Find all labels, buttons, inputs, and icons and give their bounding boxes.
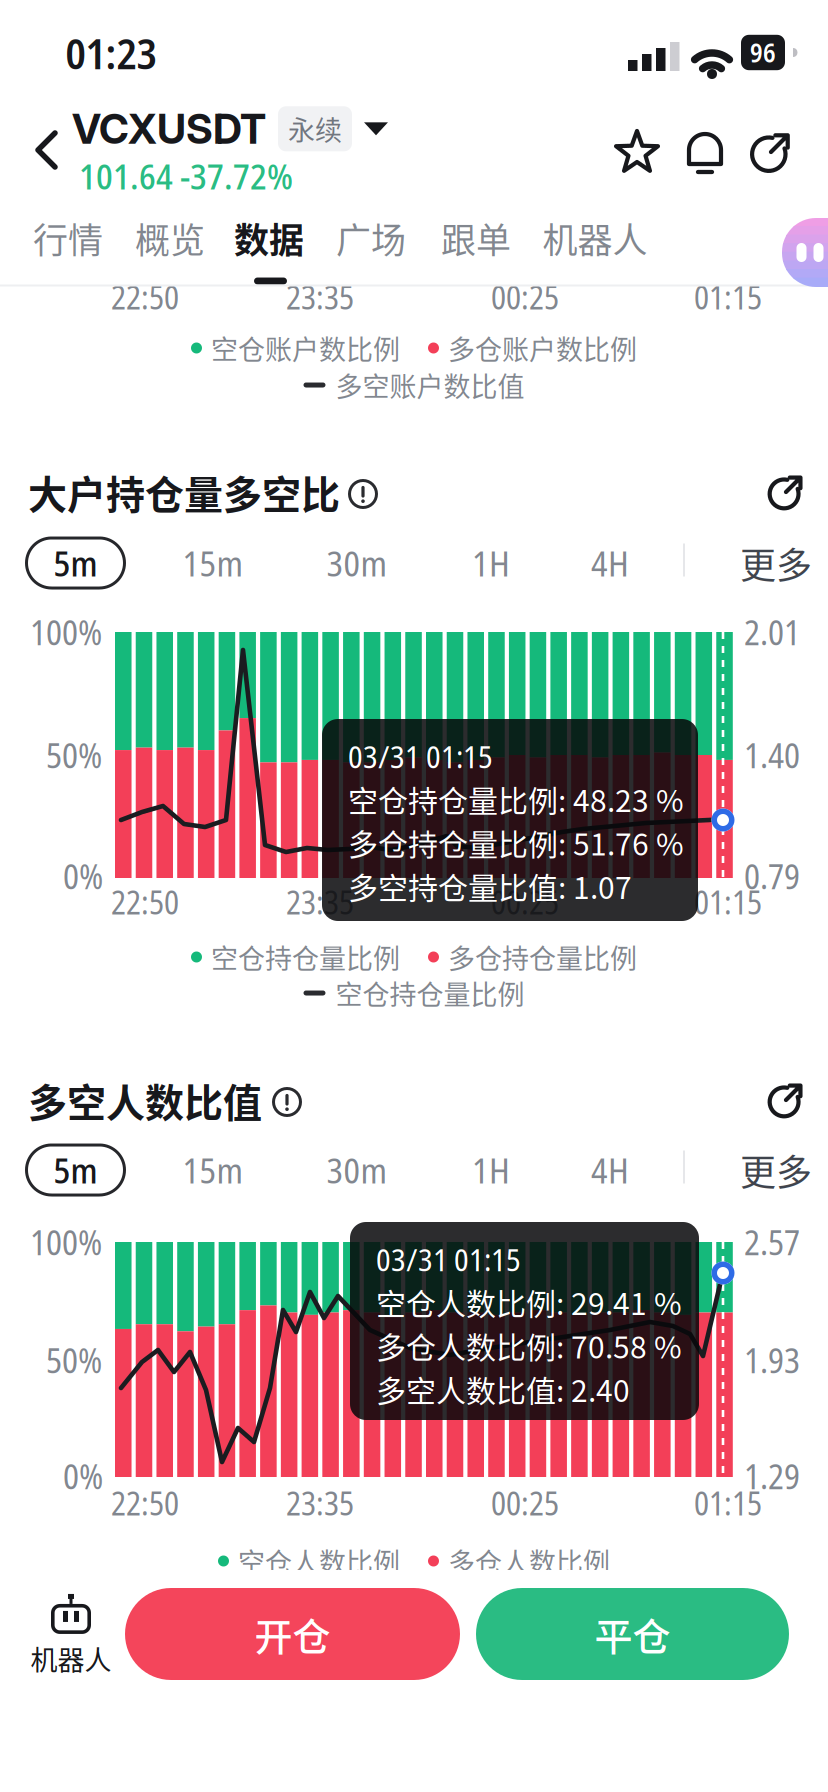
staticText: 空仓持仓量比例: 48.23 % [348,777,684,821]
button[interactable]: 30m [326,1146,387,1194]
staticText: 行情 [33,213,103,263]
button[interactable]: 机器人 [16,1593,126,1679]
staticText: 01:23 [65,24,156,82]
button[interactable]: 概览 [135,213,205,263]
staticText: 22:50 [111,275,179,319]
staticText: 多仓人数比例 [448,1541,610,1581]
button[interactable]: 15m [182,539,243,587]
button[interactable]: 1H [472,1146,510,1194]
staticText: 多空持仓量比值: 1.07 [348,864,632,907]
button[interactable]: 悬浮窗 [782,218,828,287]
staticText: 23:35 [286,275,354,319]
button[interactable]: 5m [25,1143,126,1196]
button[interactable]: 数据 [234,213,304,263]
staticText: 多仓人数比例: 70.58 % [376,1324,682,1367]
button[interactable]: 4H [591,539,629,587]
staticText: 50% [46,1337,102,1383]
staticText: 数据 [234,213,304,263]
button[interactable]: 分享 [767,1081,805,1119]
staticText: 2.01 [744,609,800,655]
staticText: 多仓账户数比例 [448,328,637,368]
staticText: 机器人 [542,213,647,263]
staticText: 03/31 01:15 [348,735,493,777]
staticText: 50% [46,732,102,778]
button[interactable]: 4H [591,1146,629,1194]
staticText: 0.79 [744,853,800,899]
button[interactable]: 收藏 [613,127,661,175]
button[interactable]: 分享 [767,473,805,511]
staticText: 101.64 -37.72% [79,152,293,200]
staticText: 空仓账户数比例 [211,328,400,368]
staticText: 0% [63,1453,103,1499]
button[interactable]: 更多 [740,1144,812,1196]
staticText: 开仓 [254,1606,330,1661]
staticText: 空仓人数比例 [238,1541,400,1581]
staticText: 空仓持仓量比例 [211,937,400,977]
button[interactable]: 预警 [681,128,729,176]
staticText: 01:15 [694,880,762,924]
staticText: 机器人 [30,1639,111,1678]
staticText: 15m [182,1146,243,1194]
staticText: 1.29 [744,1453,800,1499]
staticText: 23:35 [286,880,354,924]
button[interactable]: 15m [182,1146,243,1194]
button[interactable]: 说明 [347,478,379,510]
staticText: 100% [30,1219,102,1265]
button[interactable]: 分享 [749,130,793,174]
staticText: 广场 [336,213,406,263]
button[interactable]: 开仓 [125,1588,460,1680]
staticText: 22:50 [111,880,179,924]
staticText: 0% [63,853,103,899]
button[interactable]: 行情 [33,213,103,263]
staticText: 100% [30,609,102,655]
staticText: 概览 [135,213,205,263]
button[interactable]: 5m [25,536,126,589]
button[interactable]: 更多 [740,537,812,589]
staticText: 2.57 [744,1219,800,1265]
staticText: 1.93 [744,1337,800,1383]
staticText: 永续 [288,109,342,148]
staticText: 多仓持仓量比例 [448,937,637,977]
staticText: 23:35 [286,1481,354,1525]
staticText: 多空账户数比值 [335,365,524,405]
staticText: 多仓持仓量比例: 51.76 % [348,821,684,864]
staticText: 平仓 [594,1606,670,1661]
button[interactable]: 跟单 [441,213,511,263]
button[interactable]: Back [26,126,70,174]
staticText: 大户持仓量多空比 [28,464,340,520]
staticText: 1.40 [744,732,800,778]
button[interactable]: 30m [326,539,387,587]
button[interactable]: 广场 [336,213,406,263]
staticText: 更多 [740,537,812,589]
staticText: 跟单 [441,213,511,263]
button[interactable]: VCXUSDT 永续 [72,104,388,154]
staticText: VCXUSDT [72,104,266,154]
staticText: 00:25 [491,1481,559,1525]
staticText: 00:25 [491,880,559,924]
staticText: 30m [326,1146,387,1194]
staticText: 1H [472,539,510,587]
staticText: 多空人数比值: 2.40 [376,1367,630,1410]
staticText: 00:25 [491,275,559,319]
staticText: 5m [53,1146,97,1194]
staticText: 22:50 [111,1481,179,1525]
staticText: 多空人数比值 [28,1072,262,1128]
staticText: 30m [326,539,387,587]
button[interactable]: 1H [472,539,510,587]
staticText: 01:15 [694,275,762,319]
button[interactable]: 说明 [271,1086,303,1118]
staticText: 更多 [740,1144,812,1196]
staticText: 15m [182,539,243,587]
staticText: 1H [472,1146,510,1194]
staticText: 空仓持仓量比例 [335,973,524,1013]
button[interactable]: 机器人 [542,213,647,263]
staticText: 03/31 01:15 [376,1238,521,1280]
staticText: 96 [750,35,776,70]
staticText: 4H [591,539,629,587]
staticText: 01:15 [694,1481,762,1525]
button[interactable]: 平仓 [476,1588,789,1680]
staticText: 空仓人数比例: 29.41 % [376,1280,682,1324]
staticText: 4H [591,1146,629,1194]
staticText: 5m [53,539,97,587]
